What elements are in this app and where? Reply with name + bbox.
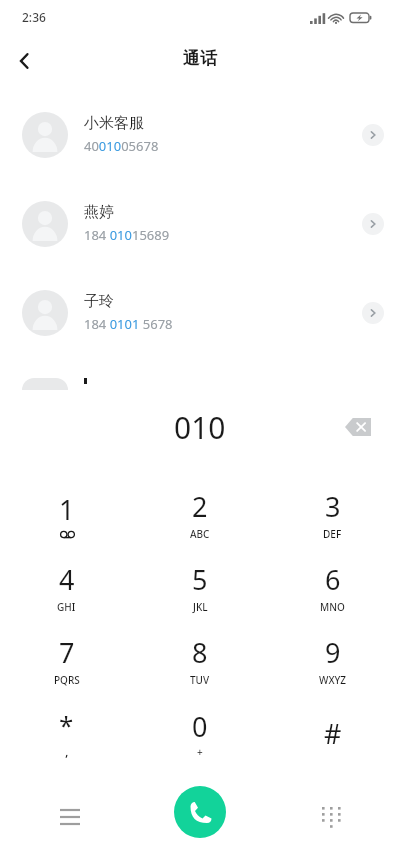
button[interactable]: Details	[362, 213, 384, 235]
staticText: 通话	[183, 48, 217, 69]
staticText: 0	[192, 708, 208, 745]
button[interactable]: 燕婷	[0, 179, 400, 268]
staticText: GHI	[57, 600, 76, 614]
staticText: 2:36	[22, 9, 46, 25]
button[interactable]: Dialpad	[305, 792, 355, 842]
staticText: 6	[325, 561, 341, 598]
button[interactable]: 9	[266, 624, 399, 697]
button[interactable]: 子玲	[0, 268, 400, 357]
button[interactable]: 3	[266, 478, 399, 551]
button[interactable]: Menu	[45, 792, 95, 842]
button[interactable]: Call	[174, 786, 226, 838]
button[interactable]: #	[266, 697, 399, 770]
button[interactable]: *	[0, 697, 133, 770]
staticText: #	[324, 715, 342, 752]
button[interactable]: 4	[0, 551, 133, 624]
button[interactable]: 5	[133, 551, 266, 624]
staticText: 010	[174, 407, 226, 448]
staticText: DEF	[323, 527, 342, 541]
staticText: ABC	[190, 527, 210, 541]
button[interactable]: Back	[4, 40, 46, 82]
staticText: 1	[59, 491, 75, 528]
staticText: 8	[192, 634, 208, 671]
staticText: ,	[65, 742, 69, 760]
staticText: TUV	[190, 673, 210, 687]
staticText: 子玲	[84, 292, 114, 311]
button[interactable]: Details	[362, 124, 384, 146]
staticText: 4	[59, 561, 75, 598]
staticText: 小米客服	[84, 114, 144, 133]
staticText: 2	[192, 488, 208, 525]
button[interactable]: 1	[0, 478, 133, 551]
staticText: 3	[325, 488, 341, 525]
button[interactable]: 0	[133, 697, 266, 770]
staticText: +	[197, 745, 203, 759]
staticText: 7	[59, 634, 75, 671]
button[interactable]: 小米客服	[0, 90, 400, 179]
staticText: PQRS	[54, 673, 80, 687]
staticText: 9	[325, 634, 341, 671]
staticText: 184 01015689	[84, 226, 170, 244]
button[interactable]: 2	[133, 478, 266, 551]
staticText: JKL	[193, 600, 208, 614]
button[interactable]: 6	[266, 551, 399, 624]
staticText: 5	[192, 561, 208, 598]
button[interactable]: 8	[133, 624, 266, 697]
staticText: 燕婷	[84, 203, 114, 222]
staticText: *	[59, 707, 74, 742]
button[interactable]: Details	[362, 302, 384, 324]
staticText: WXYZ	[319, 673, 347, 687]
button[interactable]: Delete	[338, 407, 378, 447]
staticText: 184 0101 5678	[84, 315, 173, 333]
staticText: MNO	[320, 600, 345, 614]
button[interactable]: 7	[0, 624, 133, 697]
staticText: 4001005678	[84, 137, 159, 155]
